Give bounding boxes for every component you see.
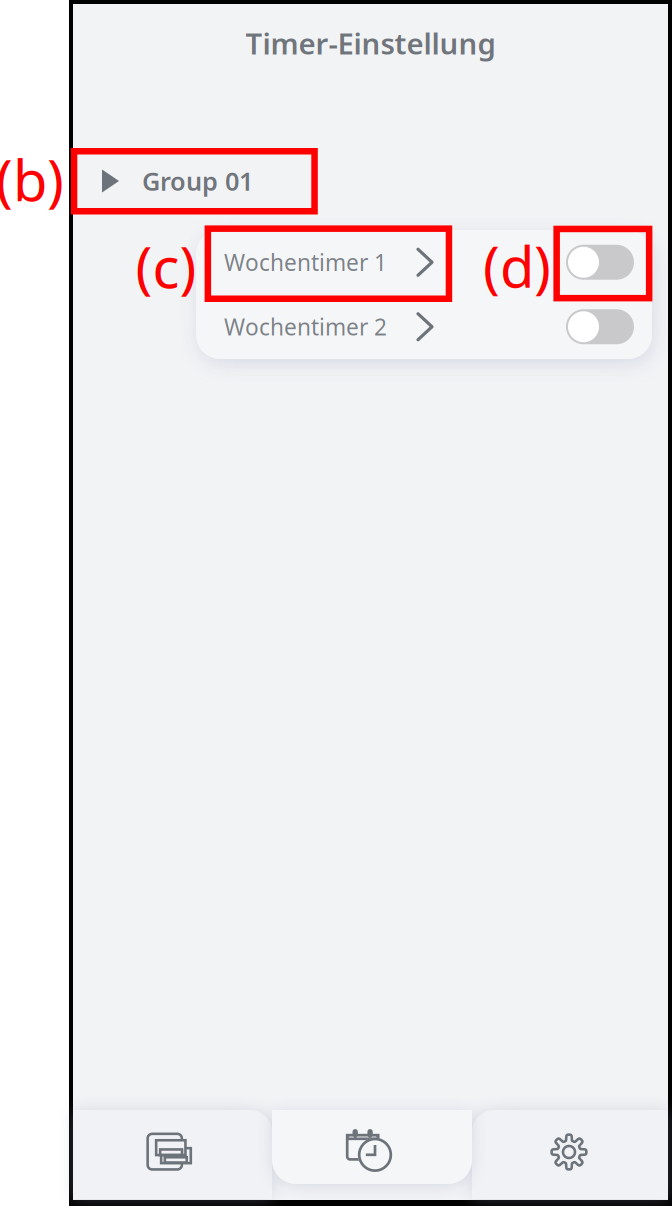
staticText: Wochentimer 2 [224,312,387,342]
button[interactable]: Devices [70,1107,269,1196]
button[interactable]: Wochentimer 1 [196,230,652,294]
staticText: (d) [483,229,551,303]
button[interactable]: Group 01 [73,150,668,212]
staticText: (c) [135,229,196,304]
staticText: Timer-Einstellung [245,23,495,62]
button[interactable]: Settings [471,1107,667,1196]
staticText: (b) [0,142,64,217]
button[interactable]: Wochentimer 2 [196,294,652,359]
staticText: Group 01 [142,164,253,198]
staticText: Wochentimer 1 [224,247,387,277]
button[interactable]: Timer [269,1113,469,1187]
